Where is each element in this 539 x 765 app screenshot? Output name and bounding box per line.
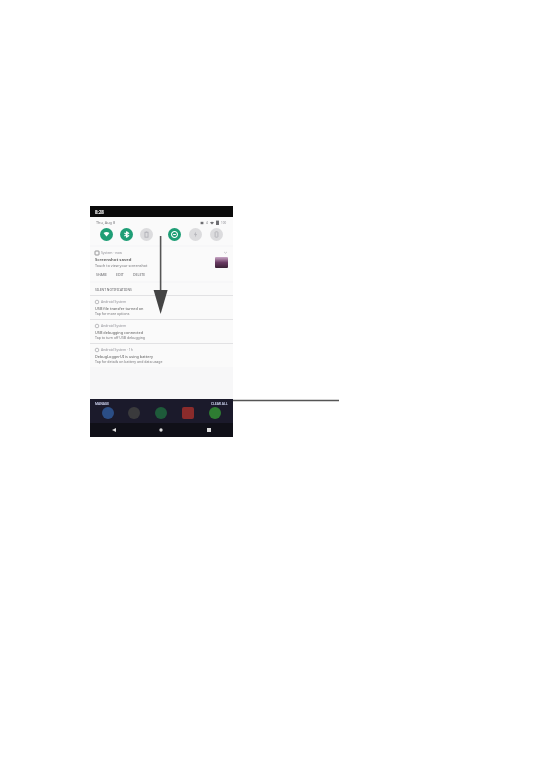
button[interactable]: Quick setting toggle: [100, 228, 113, 241]
button[interactable]: MANAGE: [95, 401, 110, 405]
button[interactable]: Quick setting toggle: [210, 228, 223, 241]
staticText: EDIT: [116, 272, 124, 277]
staticText: Thu, Aug 8: [96, 220, 116, 225]
button[interactable]: Android System · 1h: [90, 344, 233, 367]
button[interactable]: Recents: [185, 423, 233, 437]
staticText: DebugLoggerUI is using battery: [95, 354, 154, 359]
staticText: Screenshot saved: [95, 257, 132, 263]
staticText: CLEAR ALL: [211, 401, 228, 405]
button[interactable]: Quick setting toggle: [168, 228, 181, 241]
button[interactable]: Home: [137, 423, 185, 437]
button[interactable]: System · now: [90, 247, 233, 281]
staticText: 4: [206, 221, 208, 225]
button[interactable]: SHARE: [95, 271, 108, 278]
staticText: Android System: [101, 323, 127, 328]
staticText: USB file transfer turned on: [95, 306, 144, 311]
button[interactable]: CLEAR ALL: [211, 401, 228, 405]
staticText: MANAGE: [95, 401, 110, 405]
staticText: Touch to view your screenshot: [95, 263, 148, 268]
staticText: SILENT NOTIFICATIONS: [95, 287, 132, 291]
staticText: Android System · 1h: [101, 347, 133, 352]
button[interactable]: Back: [90, 423, 137, 437]
button[interactable]: Expand: [223, 250, 228, 255]
button[interactable]: App notification: [155, 407, 167, 419]
button[interactable]: Quick setting toggle: [120, 228, 133, 241]
staticText: 100: [221, 221, 227, 225]
button[interactable]: App notification: [128, 407, 140, 419]
button[interactable]: DELETE: [132, 271, 147, 278]
staticText: 8:28: [95, 209, 104, 215]
staticText: USB debugging connected: [95, 330, 144, 335]
button[interactable]: Android System: [90, 296, 233, 319]
button[interactable]: Android System: [90, 320, 233, 343]
staticText: Tap to turn off USB debugging: [95, 335, 145, 340]
staticText: SHARE: [96, 272, 107, 277]
staticText: Android System: [101, 299, 127, 304]
button[interactable]: Quick setting toggle: [189, 228, 202, 241]
staticText: System · now: [101, 250, 122, 255]
button[interactable]: App notification: [209, 407, 221, 419]
staticText: Tap for more options: [95, 311, 130, 316]
staticText: Tap for details on battery and data usag…: [95, 359, 163, 364]
button[interactable]: Quick setting toggle: [140, 228, 153, 241]
staticText: DELETE: [133, 272, 146, 277]
button[interactable]: EDIT: [115, 271, 125, 278]
button[interactable]: App notification: [102, 407, 114, 419]
button[interactable]: App notification: [182, 407, 194, 419]
